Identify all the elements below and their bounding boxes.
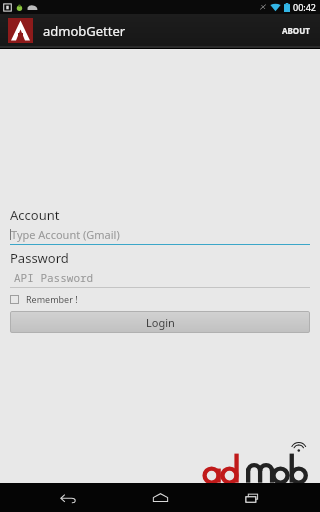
staticText: Login	[146, 315, 175, 330]
button[interactable]: Recent apps	[228, 483, 276, 512]
button[interactable]: Back	[44, 483, 92, 512]
button[interactable]: Login	[10, 311, 310, 333]
button[interactable]: Type Account (Gmail)	[10, 227, 310, 245]
staticText: Type Account (Gmail)	[11, 227, 120, 242]
button[interactable]: API Password	[10, 270, 310, 288]
staticText: admobGetter	[43, 22, 126, 40]
staticText: Password	[10, 249, 69, 267]
button[interactable]: Home	[136, 483, 184, 512]
staticText: API Password	[14, 270, 94, 285]
staticText: 00:42	[293, 1, 317, 13]
staticText: Account	[10, 206, 60, 224]
staticText: Remember !	[26, 293, 78, 305]
button[interactable]: ABOUT	[272, 19, 320, 42]
staticText: ABOUT	[282, 25, 310, 36]
button[interactable]: Remember !	[10, 293, 78, 305]
